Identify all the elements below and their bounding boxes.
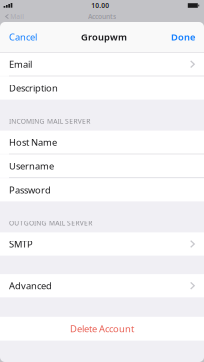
button[interactable]: Password: [0, 178, 204, 201]
staticText: Cancel: [9, 31, 37, 43]
button[interactable]: Advanced: [0, 274, 204, 297]
staticText: Groupwm: [81, 31, 127, 43]
button[interactable]: Cancel: [9, 26, 43, 48]
staticText: SMTP: [9, 238, 33, 250]
button[interactable]: Done: [165, 26, 195, 48]
button[interactable]: Host Name: [0, 131, 204, 154]
button[interactable]: SMTP: [0, 232, 204, 256]
staticText: Delete Account: [70, 322, 134, 335]
button[interactable]: Description: [0, 76, 204, 100]
staticText: 10.00: [91, 1, 109, 10]
staticText: Accounts: [88, 12, 116, 21]
staticText: Advanced: [9, 279, 52, 292]
staticText: OUTGOING MAIL SERVER: [9, 218, 92, 227]
staticText: Email: [9, 58, 32, 70]
staticText: Done: [171, 31, 195, 43]
staticText: Host Name: [9, 136, 57, 148]
button[interactable]: Username: [0, 154, 204, 178]
button[interactable]: Email: [0, 53, 204, 76]
button[interactable]: Delete Account: [0, 317, 204, 341]
staticText: Password: [9, 184, 51, 196]
staticText: Mail: [10, 12, 24, 21]
staticText: INCOMING MAIL SERVER: [9, 117, 90, 126]
staticText: Description: [9, 82, 58, 94]
staticText: Username: [9, 160, 54, 172]
